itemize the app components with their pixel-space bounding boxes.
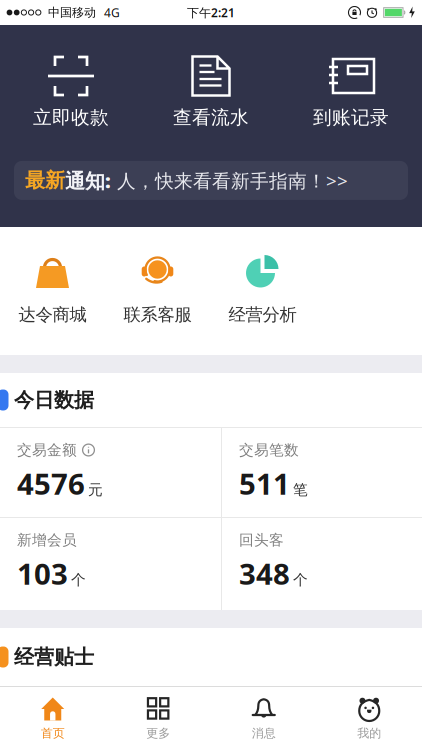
button[interactable]: 达令商城 xyxy=(0,254,105,325)
staticText: 更多 xyxy=(146,726,170,741)
staticText: 交易金额 xyxy=(17,441,77,459)
staticText: 联系客服 xyxy=(123,304,191,325)
staticText: 消息 xyxy=(252,726,276,741)
button[interactable]: 最新 xyxy=(14,161,408,200)
staticText: 中国移动 xyxy=(48,5,96,20)
staticText: 经营分析 xyxy=(228,304,296,325)
staticText: 首页 xyxy=(41,726,65,741)
staticText: 下午2:21 xyxy=(187,4,235,20)
button[interactable]: 我的 xyxy=(316,687,422,741)
staticText: 查看流水 xyxy=(173,106,249,129)
staticText: 我的 xyxy=(357,726,381,741)
staticText: 348 xyxy=(239,554,290,593)
staticText: 最新 xyxy=(25,168,65,193)
staticText: 个 xyxy=(71,571,86,589)
button[interactable]: 更多 xyxy=(105,687,211,741)
staticText: 人，快来看看新手指南！>> xyxy=(117,168,348,193)
staticText: 新增会员 xyxy=(17,531,77,549)
staticText: 回头客 xyxy=(239,531,284,549)
staticText: 个 xyxy=(293,571,308,589)
staticText: 到账记录 xyxy=(313,106,389,129)
button[interactable]: 查看流水 xyxy=(141,55,281,129)
button[interactable]: 消息 xyxy=(211,687,316,741)
staticText: 今日数据 xyxy=(14,388,94,412)
staticText: 4G xyxy=(104,4,120,20)
staticText: 通知: xyxy=(65,167,111,194)
staticText: 立即收款 xyxy=(33,106,109,129)
staticText: 4576 xyxy=(17,464,85,503)
staticText: 511 xyxy=(239,464,290,503)
button[interactable]: 立即收款 xyxy=(1,55,141,129)
button[interactable]: 到账记录 xyxy=(281,55,421,129)
button[interactable]: 联系客服 xyxy=(105,254,210,325)
staticText: 笔 xyxy=(293,481,308,499)
staticText: 经营贴士 xyxy=(14,645,94,669)
staticText: 交易笔数 xyxy=(239,441,299,459)
staticText: 元 xyxy=(88,481,103,499)
staticText: 达令商城 xyxy=(18,304,86,325)
button[interactable]: 经营分析 xyxy=(210,254,315,325)
button[interactable]: 首页 xyxy=(0,687,105,741)
staticText: 103 xyxy=(17,554,68,593)
